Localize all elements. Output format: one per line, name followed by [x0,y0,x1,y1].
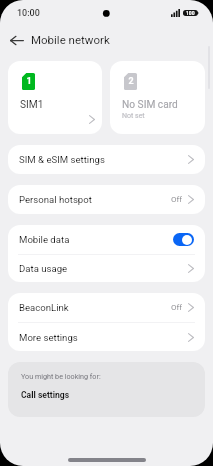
button[interactable]: SIM & eSIM settings [8,145,205,174]
button[interactable]: Data usage [8,255,205,282]
staticText: Data usage [19,263,68,274]
button[interactable]: More settings [8,323,205,351]
staticText: Off [171,195,183,204]
button[interactable]: 1 [8,61,102,134]
staticText: You might be looking for: [21,372,101,380]
button[interactable]: Personal hotspot [8,185,205,214]
staticText: 1 [26,76,32,87]
staticText: More settings [19,332,78,343]
staticText: Mobile network [31,33,110,46]
staticText: No SIM card [122,99,178,111]
staticText: Not set [122,112,145,120]
button[interactable]: 2 [110,61,205,134]
button[interactable]: Mobile data [8,225,205,254]
staticText: 10:00 [17,8,40,19]
staticText: SIM1 [20,99,44,111]
staticText: SIM & eSIM settings [19,154,105,165]
button[interactable]: BeaconLink [8,293,205,322]
staticText: 2 [128,76,134,87]
staticText: 100 [186,10,195,16]
staticText: Personal hotspot [19,194,92,205]
staticText: Call settings [21,390,70,400]
staticText: BeaconLink [19,302,69,313]
button[interactable]: Back [5,28,29,52]
staticText: Off [171,303,183,312]
staticText: Mobile data [19,234,70,245]
